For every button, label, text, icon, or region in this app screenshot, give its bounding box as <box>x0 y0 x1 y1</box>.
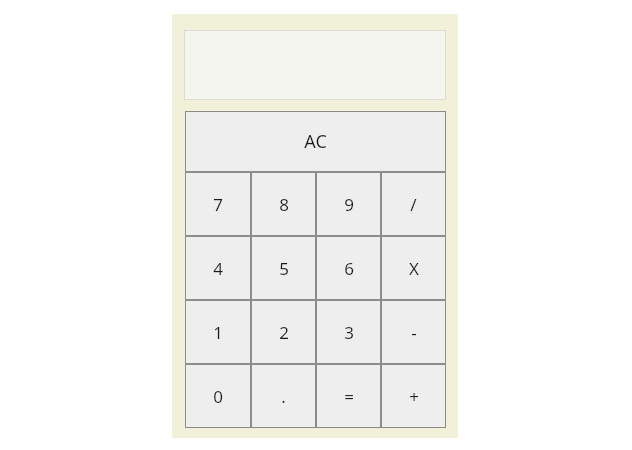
button[interactable]: 2 <box>251 300 316 364</box>
button[interactable]: 1 <box>185 300 251 364</box>
staticText: / <box>410 193 417 216</box>
button[interactable]: 6 <box>316 236 381 300</box>
staticText: X <box>409 257 419 280</box>
staticText: 5 <box>279 257 289 280</box>
button[interactable]: 3 <box>316 300 381 364</box>
button[interactable]: 0 <box>185 364 251 428</box>
staticText: AC <box>304 129 327 154</box>
button[interactable]: AC <box>185 111 446 172</box>
staticText: 1 <box>213 321 223 344</box>
staticText: 9 <box>344 193 354 216</box>
staticText: 2 <box>279 321 289 344</box>
button[interactable]: + <box>381 364 446 428</box>
staticText: 6 <box>344 257 354 280</box>
button[interactable]: 5 <box>251 236 316 300</box>
button[interactable]: - <box>381 300 446 364</box>
button[interactable]: / <box>381 172 446 236</box>
button[interactable]: 4 <box>185 236 251 300</box>
button[interactable]: 7 <box>185 172 251 236</box>
staticText: 3 <box>344 321 354 344</box>
button[interactable]: = <box>316 364 381 428</box>
staticText: 7 <box>213 193 223 216</box>
button[interactable]: 8 <box>251 172 316 236</box>
staticText: = <box>344 385 354 408</box>
button[interactable]: . <box>251 364 316 428</box>
staticText: 4 <box>213 257 223 280</box>
staticText: 8 <box>279 193 289 216</box>
button[interactable] <box>184 30 446 100</box>
staticText: . <box>281 385 286 408</box>
staticText: + <box>409 385 419 408</box>
button[interactable]: X <box>381 236 446 300</box>
staticText: 0 <box>213 385 223 408</box>
staticText: - <box>411 321 417 344</box>
button[interactable]: 9 <box>316 172 381 236</box>
